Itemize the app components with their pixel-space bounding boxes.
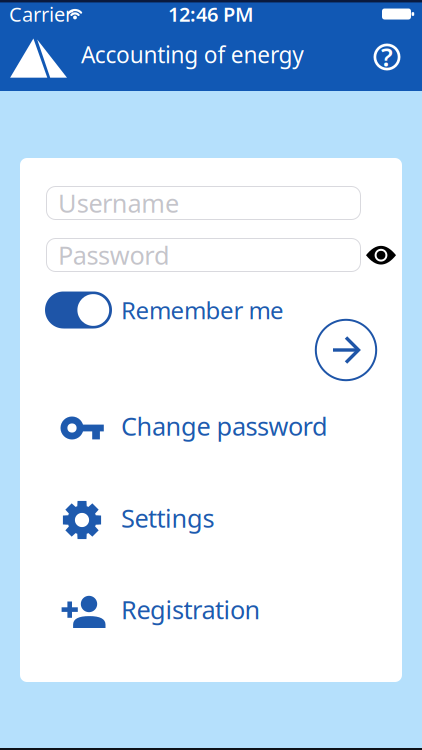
- button[interactable]: Log in: [315, 319, 376, 380]
- staticText: Carrier: [9, 1, 73, 27]
- staticText: 12:46 PM: [168, 1, 254, 27]
- button[interactable]: Settings: [20, 498, 380, 542]
- button[interactable]: Password: [46, 238, 361, 272]
- staticText: Accounting of energy: [81, 39, 304, 69]
- staticText: Remember me: [121, 294, 284, 326]
- button[interactable]: Show password: [366, 246, 396, 264]
- button[interactable]: Username: [46, 186, 361, 220]
- staticText: Password: [58, 238, 170, 272]
- staticText: Username: [58, 186, 179, 220]
- staticText: ?: [381, 40, 393, 73]
- staticText: Change password: [121, 409, 328, 443]
- staticText: Registration: [121, 593, 260, 626]
- staticText: Settings: [121, 501, 214, 535]
- button[interactable]: Help: [373, 43, 400, 70]
- button[interactable]: Remember me: [45, 291, 335, 329]
- button[interactable]: Registration: [20, 589, 380, 633]
- button[interactable]: Change password: [20, 406, 380, 450]
